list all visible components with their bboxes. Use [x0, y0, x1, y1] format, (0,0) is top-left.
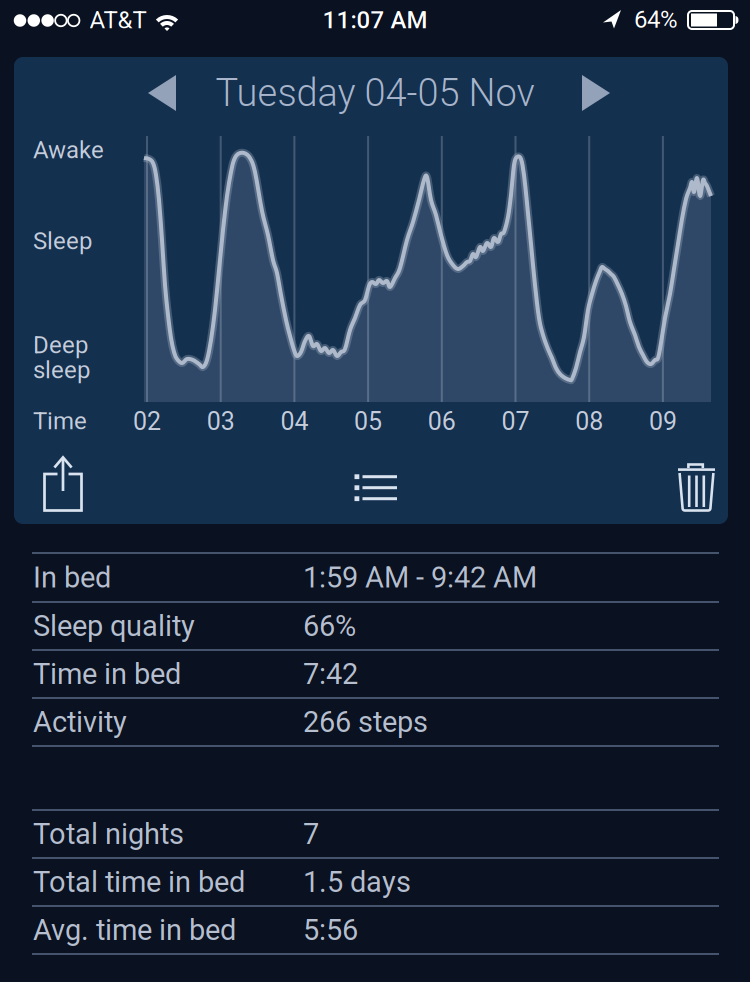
staticText: 7:42: [303, 657, 358, 691]
staticText: sleep: [33, 356, 90, 384]
staticText: Total nights: [33, 817, 184, 851]
staticText: Time: [33, 407, 87, 435]
staticText: 07: [501, 407, 529, 436]
staticText: 08: [575, 407, 603, 436]
staticText: 05: [354, 407, 382, 436]
staticText: 03: [207, 407, 235, 436]
staticText: 5:56: [303, 913, 358, 947]
staticText: Sleep quality: [33, 609, 195, 643]
button[interactable]: Previous day: [148, 75, 176, 111]
staticText: 02: [133, 407, 161, 436]
staticText: Tuesday 04-05 Nov: [215, 71, 534, 115]
staticText: AT&T: [89, 6, 146, 34]
staticText: 66%: [303, 609, 356, 643]
staticText: 7: [303, 817, 319, 851]
staticText: Avg. time in bed: [33, 913, 236, 947]
staticText: 1:59 AM - 9:42 AM: [303, 560, 537, 594]
staticText: Sleep: [33, 227, 92, 255]
staticText: Awake: [33, 136, 104, 164]
staticText: 04: [280, 407, 308, 436]
staticText: In bed: [33, 560, 111, 594]
button[interactable]: Share: [43, 456, 83, 512]
staticText: 11:07 AM: [322, 6, 427, 34]
button[interactable]: Sleep notes: [354, 474, 397, 501]
staticText: Time in bed: [33, 657, 181, 691]
button[interactable]: Delete: [678, 463, 715, 512]
staticText: 266 steps: [303, 705, 428, 739]
staticText: 09: [649, 407, 677, 436]
button[interactable]: Next day: [582, 75, 610, 111]
staticText: Total time in bed: [33, 865, 245, 899]
staticText: 1.5 days: [303, 865, 411, 899]
staticText: Activity: [33, 705, 127, 739]
staticText: 64%: [634, 5, 678, 33]
staticText: 06: [428, 407, 456, 436]
staticText: Deep: [33, 331, 88, 359]
